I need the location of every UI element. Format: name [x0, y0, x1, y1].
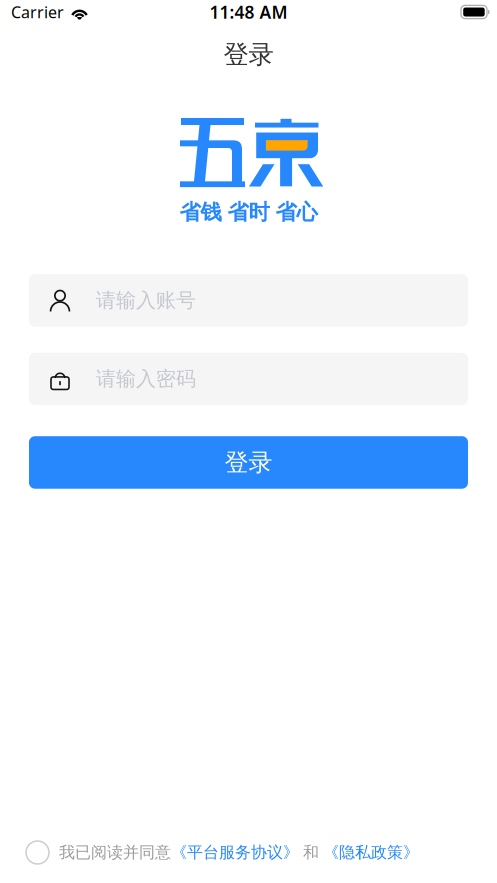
button[interactable]: 《隐私政策》	[323, 843, 419, 862]
staticText: 《隐私政策》	[323, 843, 419, 862]
button[interactable]: 请输入密码	[29, 353, 468, 405]
button[interactable]: 同意协议	[26, 841, 49, 864]
staticText: Carrier	[11, 1, 64, 23]
staticText: 11:48 AM	[209, 0, 287, 23]
staticText: 登录	[223, 39, 273, 70]
staticText: 和	[303, 843, 319, 862]
staticText: 请输入密码	[96, 367, 196, 391]
staticText: 省钱 省时 省心	[179, 199, 317, 225]
staticText: 《平台服务协议》	[171, 843, 299, 862]
button[interactable]: 《平台服务协议》	[171, 843, 299, 862]
staticText: 请输入账号	[96, 288, 196, 313]
staticText: 登录	[224, 448, 272, 477]
staticText: 我已阅读并同意	[59, 843, 171, 862]
button[interactable]: 登录	[29, 436, 468, 489]
button[interactable]: 请输入账号	[29, 274, 468, 327]
